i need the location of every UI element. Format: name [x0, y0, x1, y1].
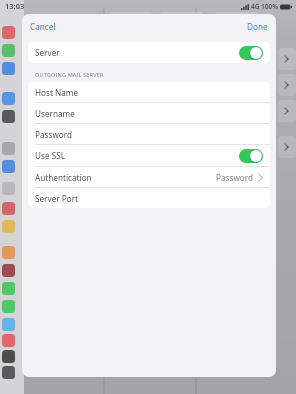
staticText: Cancel — [30, 21, 56, 32]
button[interactable]: Cancel — [22, 17, 64, 36]
button[interactable]: Server Port — [28, 188, 270, 208]
staticText: Server Port — [35, 193, 263, 204]
button[interactable]: Server — [28, 42, 270, 63]
button[interactable]: Authentication — [28, 167, 270, 187]
staticText: Username — [35, 108, 263, 119]
button[interactable]: Host Name — [28, 82, 270, 102]
staticText: Password — [35, 129, 263, 140]
staticText: Done — [247, 21, 268, 32]
staticText: Password — [216, 172, 254, 183]
button[interactable]: Username — [28, 103, 270, 123]
staticText: Host Name — [35, 87, 263, 98]
staticText: 100% — [261, 2, 278, 11]
button[interactable]: Toggle — [239, 46, 263, 60]
button[interactable]: Password — [28, 124, 270, 144]
staticText: 4G — [251, 2, 260, 11]
staticText: Authentication — [35, 172, 216, 183]
staticText: Server — [35, 47, 239, 58]
staticText: Use SSL — [35, 150, 239, 161]
staticText: 13:03 — [5, 1, 25, 11]
button[interactable]: Done — [239, 17, 276, 36]
button[interactable]: Toggle — [239, 149, 263, 163]
staticText: OUTGOING MAIL SERVER — [35, 71, 104, 79]
button[interactable]: Use SSL — [28, 145, 270, 166]
